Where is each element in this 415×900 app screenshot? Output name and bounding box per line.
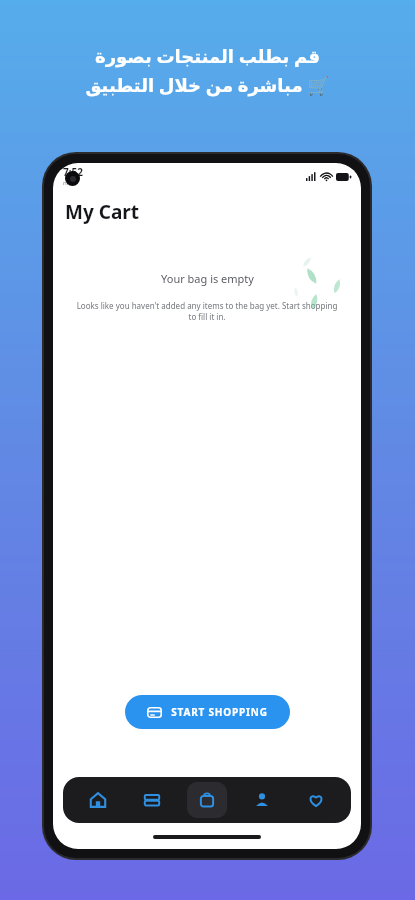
staticText: My Cart: [65, 199, 140, 225]
staticText: قم بطلب المنتجات بصورة: [95, 44, 320, 69]
staticText: START SHOPPING: [171, 705, 268, 719]
staticText: nh: [63, 179, 71, 187]
staticText: 7:52: [63, 165, 83, 179]
button[interactable]: Home: [78, 782, 118, 818]
button[interactable]: START SHOPPING: [125, 695, 290, 729]
staticText: مباشرة من خلال التطبيق 🛒: [85, 73, 330, 98]
button[interactable]: Orders: [132, 782, 172, 818]
button[interactable]: Favourites: [296, 782, 336, 818]
staticText: Your bag is empty: [161, 271, 254, 286]
button[interactable]: Cart: [187, 782, 227, 818]
button[interactable]: Profile: [242, 782, 282, 818]
staticText: Looks like you haven't added any items t…: [75, 300, 339, 323]
